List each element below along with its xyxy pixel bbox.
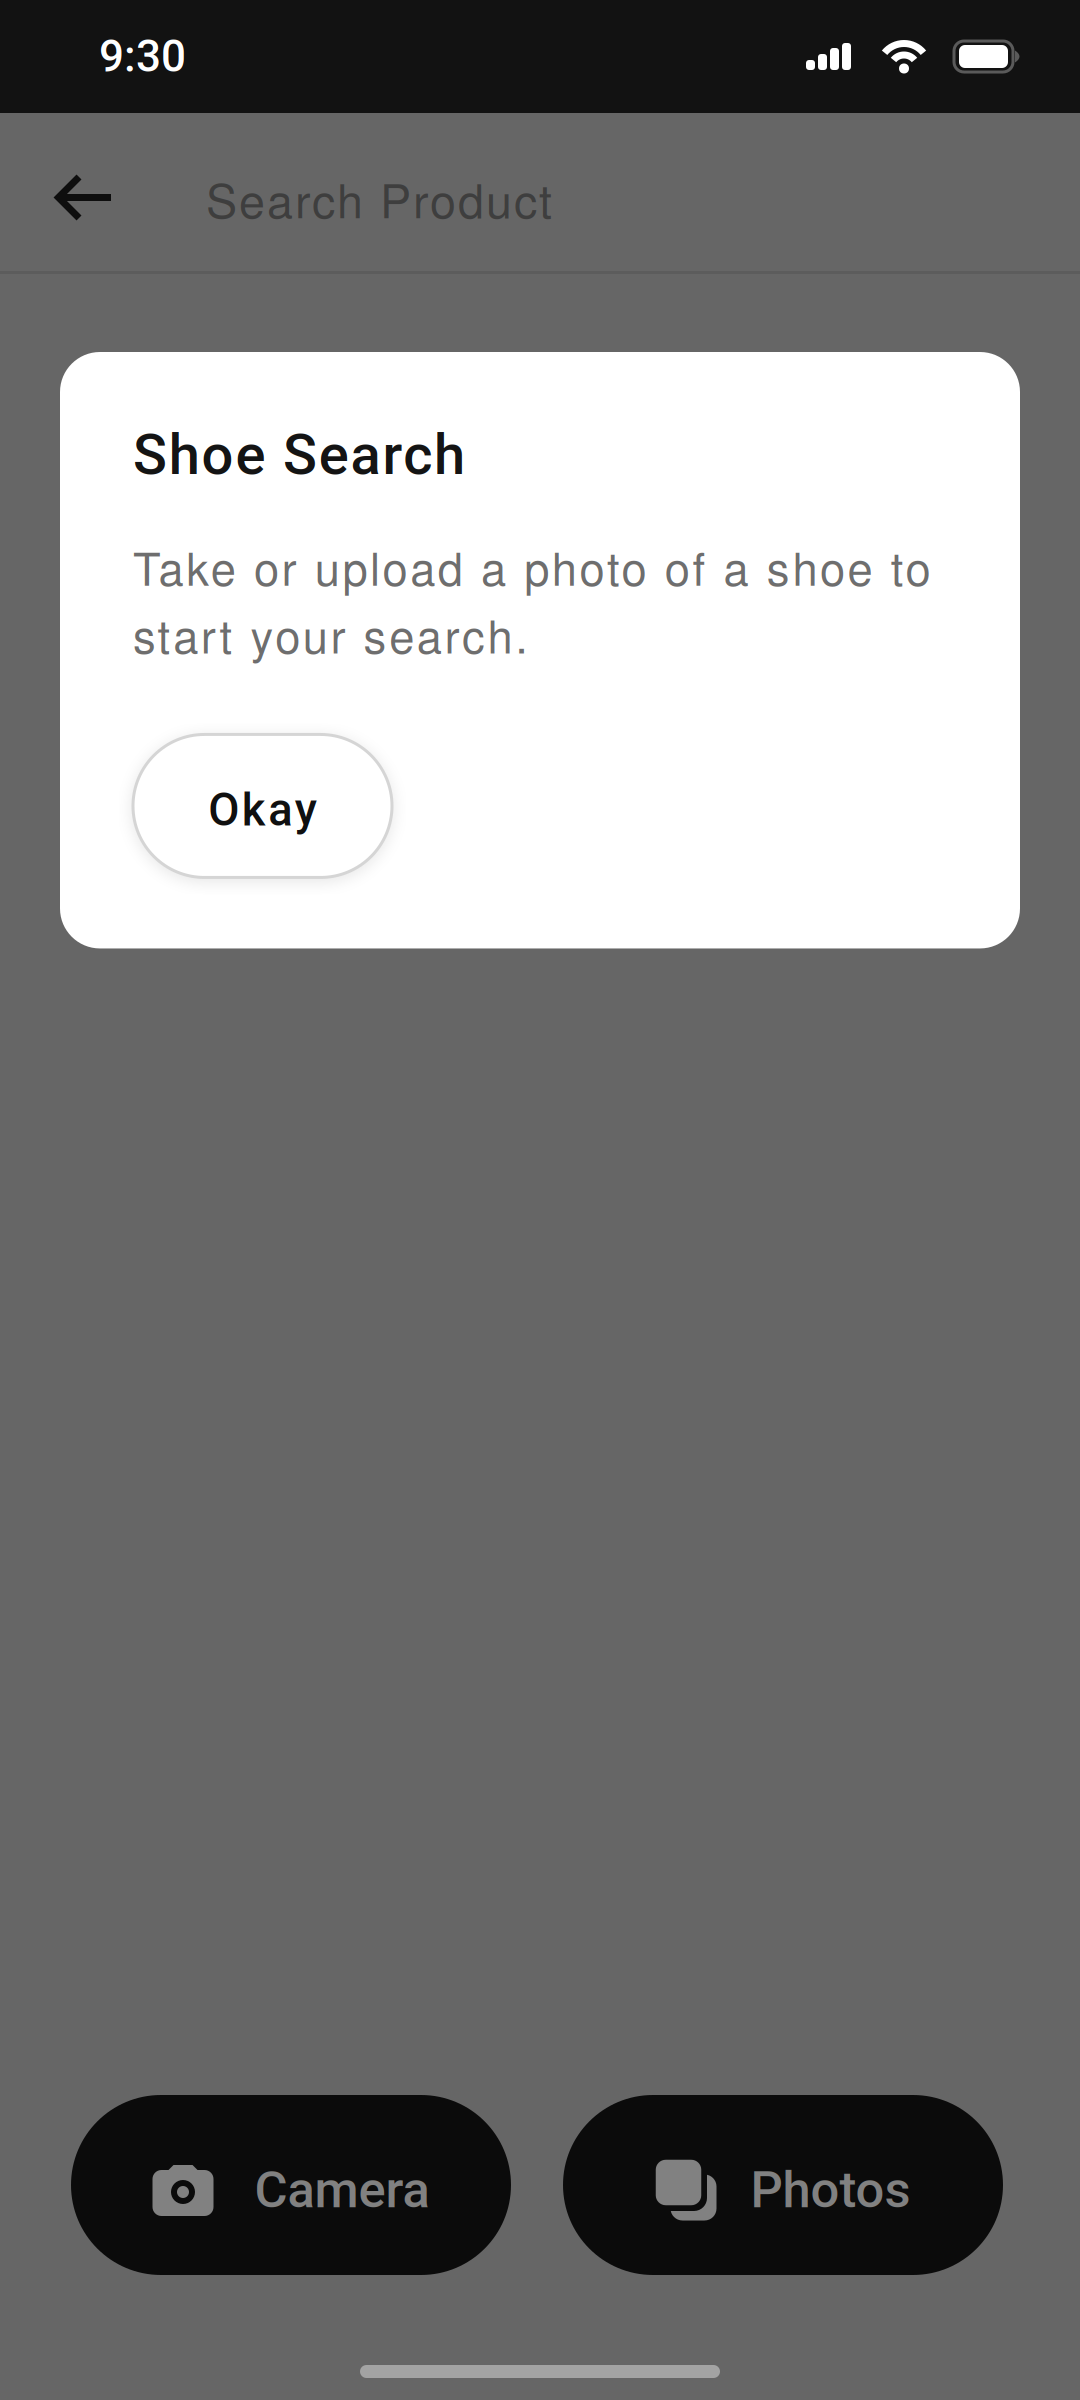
button[interactable]: Photos xyxy=(563,2095,1003,2275)
staticText: Shoe Search xyxy=(133,422,465,488)
staticText: Search Product xyxy=(206,165,552,231)
button[interactable]: Camera xyxy=(71,2095,511,2275)
staticText: 9:30 xyxy=(99,31,186,82)
staticText: Photos xyxy=(750,2160,910,2220)
staticText: Okay xyxy=(208,783,317,836)
button[interactable]: Okay xyxy=(133,734,392,877)
staticText: Camera xyxy=(254,2160,429,2220)
staticText: Take or upload a photo of a shoe to star… xyxy=(133,534,930,666)
button[interactable]: Back xyxy=(0,164,112,219)
